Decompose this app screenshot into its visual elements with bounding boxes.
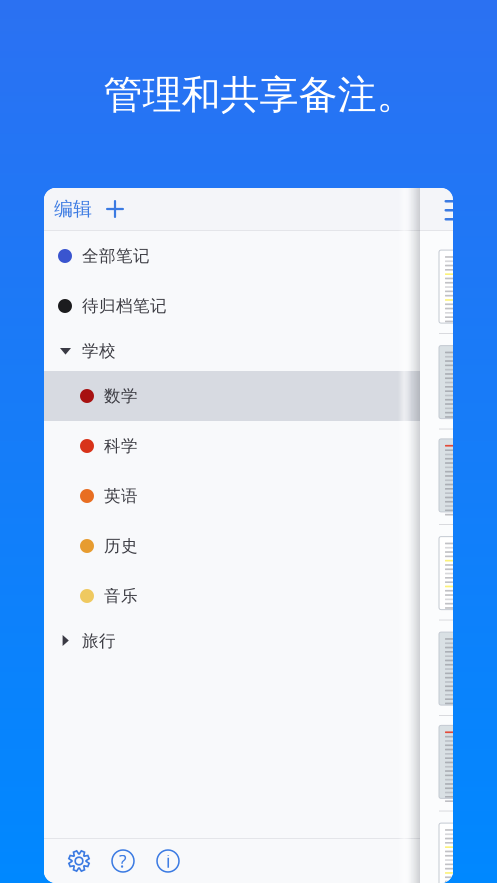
staticText: 编辑 [54, 197, 92, 221]
staticText: 全部笔记 [82, 246, 150, 266]
button[interactable]: 旅行 [44, 621, 420, 661]
button[interactable]: 全部笔记 [44, 231, 420, 281]
button[interactable]: 历史 [44, 521, 420, 571]
button[interactable]: 待归档笔记 [44, 281, 420, 331]
button[interactable]: 设置 [62, 839, 96, 883]
staticText: 数学 [104, 386, 138, 406]
button[interactable]: 信息 [151, 839, 185, 883]
staticText: i [166, 849, 170, 873]
button[interactable]: 新建笔记 [98, 188, 132, 230]
staticText: 管理和共享备注。 [103, 70, 415, 120]
button[interactable]: 英语 [44, 471, 420, 521]
staticText: 英语 [104, 486, 138, 506]
staticText: 历史 [104, 536, 138, 556]
staticText: 待归档笔记 [82, 296, 167, 316]
staticText: 旅行 [82, 631, 116, 651]
staticText: 科学 [104, 436, 138, 456]
button[interactable]: 数学 [44, 371, 420, 421]
button[interactable]: 帮助 [106, 839, 140, 883]
staticText: ? [119, 849, 127, 873]
button[interactable]: 编辑 [50, 188, 96, 230]
staticText: 学校 [82, 341, 116, 361]
staticText: 音乐 [104, 586, 138, 606]
button[interactable]: 学校 [44, 331, 420, 371]
button[interactable]: 科学 [44, 421, 420, 471]
button[interactable]: 音乐 [44, 571, 420, 621]
